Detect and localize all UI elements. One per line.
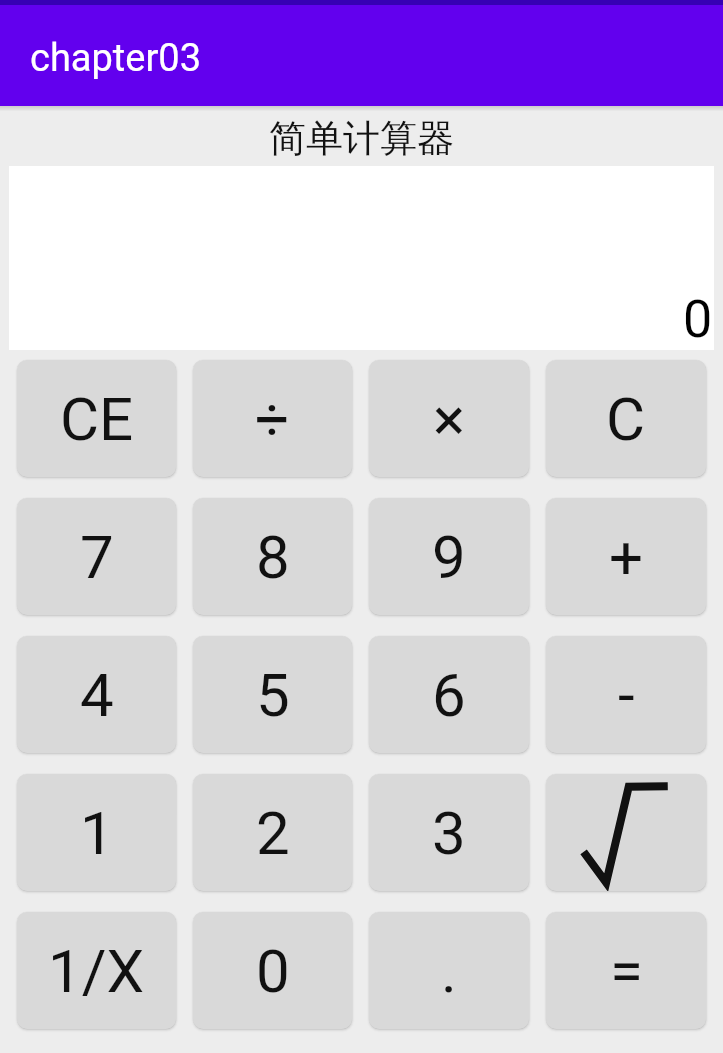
staticText: 0 (256, 936, 290, 1006)
button[interactable]: 3 (369, 774, 529, 891)
staticText: 简单计算器 (269, 115, 454, 162)
button[interactable]: 6 (369, 636, 529, 753)
button[interactable] (546, 774, 706, 891)
staticText: 1/X (48, 936, 145, 1006)
button[interactable]: + (546, 498, 706, 615)
staticText: CE (60, 384, 134, 454)
staticText: 3 (432, 798, 466, 868)
button[interactable]: 1/X (17, 912, 176, 1029)
button[interactable]: CE (17, 360, 176, 477)
staticText: = (610, 936, 643, 1006)
button[interactable]: 1 (17, 774, 176, 891)
staticText: 8 (256, 522, 290, 592)
staticText: + (609, 522, 644, 592)
staticText: 0 (683, 289, 713, 350)
staticText: 2 (256, 798, 290, 868)
staticText: - (618, 660, 635, 730)
button[interactable]: = (546, 912, 706, 1029)
staticText: 4 (80, 660, 114, 730)
staticText: 7 (80, 522, 114, 592)
staticText: 9 (432, 522, 466, 592)
staticText: C (606, 384, 646, 454)
button[interactable]: 4 (17, 636, 176, 753)
button[interactable]: 9 (369, 498, 529, 615)
staticText: 1 (80, 798, 114, 868)
button[interactable]: 0 (9, 166, 714, 350)
button[interactable]: - (546, 636, 706, 753)
staticText: ÷ (255, 384, 290, 454)
button[interactable]: 5 (193, 636, 352, 753)
staticText: 5 (256, 660, 290, 730)
staticText: × (433, 384, 466, 454)
button[interactable]: 2 (193, 774, 352, 891)
button[interactable]: 8 (193, 498, 352, 615)
staticText: . (441, 936, 457, 1006)
button[interactable]: C (546, 360, 706, 477)
staticText: chapter03 (30, 36, 201, 81)
button[interactable]: × (369, 360, 529, 477)
button[interactable]: . (369, 912, 529, 1029)
staticText: 6 (432, 660, 466, 730)
button[interactable]: ÷ (193, 360, 352, 477)
button[interactable]: 0 (193, 912, 352, 1029)
button[interactable]: 7 (17, 498, 176, 615)
